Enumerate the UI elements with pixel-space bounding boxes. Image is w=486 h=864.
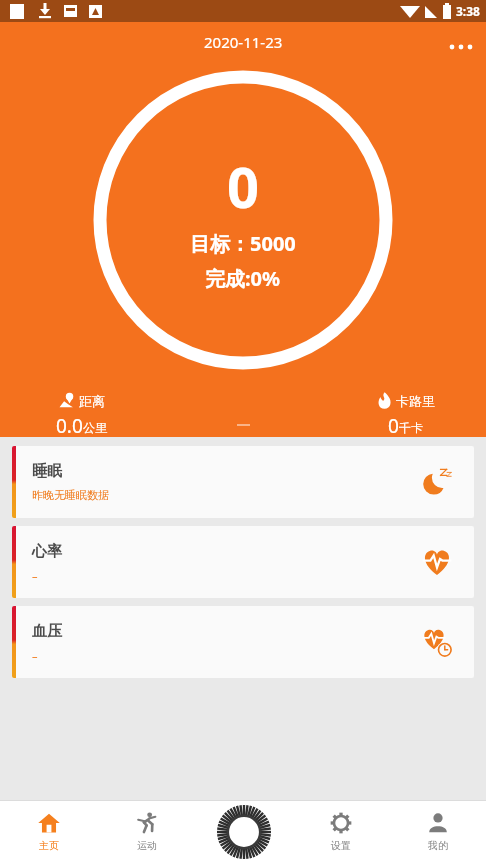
staticText: 2020-11-23 — [204, 32, 283, 52]
staticText: 设置 — [331, 839, 351, 852]
staticText: 千卡 — [399, 420, 423, 435]
staticText: 3:38 — [456, 3, 480, 19]
button[interactable]: 我的 — [389, 800, 486, 864]
staticText: 目标：5000 — [190, 230, 296, 257]
button[interactable]: 设置 — [292, 800, 389, 864]
staticText: – — [32, 648, 38, 663]
button[interactable]: 主页 — [0, 800, 98, 864]
staticText: 完成:0% — [205, 265, 281, 292]
staticText: 0 — [227, 148, 260, 224]
staticText: 血压 — [32, 622, 62, 641]
staticText: 我的 — [428, 839, 448, 852]
button[interactable]: 心率 — [12, 526, 474, 598]
staticText: – — [32, 568, 38, 583]
button[interactable]: 血压 — [12, 606, 474, 678]
staticText: 公里 — [83, 420, 107, 435]
staticText: 睡眠 — [32, 462, 62, 481]
button[interactable]: 睡眠 — [12, 446, 474, 518]
button[interactable]: More options — [442, 28, 480, 66]
staticText: 运动 — [137, 839, 157, 852]
button[interactable]: 运动 — [98, 800, 195, 864]
staticText: 昨晚无睡眠数据 — [32, 488, 109, 502]
staticText: 卡路里 — [396, 393, 435, 409]
staticText: 距离 — [79, 393, 105, 409]
button[interactable]: Start workout — [217, 805, 271, 859]
staticText: 0 — [388, 413, 399, 437]
staticText: 主页 — [39, 839, 59, 852]
staticText: 0.0 — [56, 413, 83, 437]
staticText: 心率 — [32, 542, 62, 561]
